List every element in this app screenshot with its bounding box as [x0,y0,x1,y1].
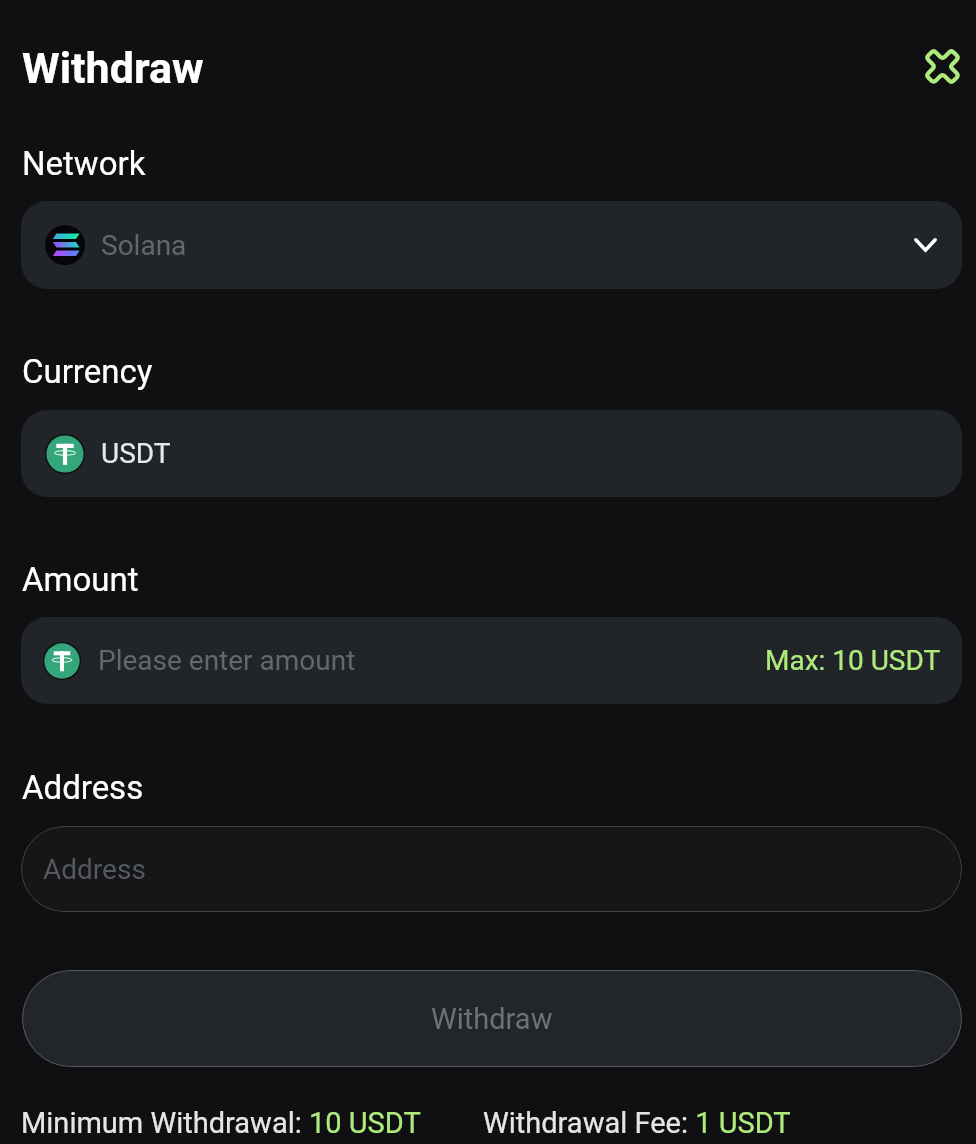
staticText: Please enter amount [98,644,356,677]
button[interactable]: Address [21,826,962,912]
staticText: Network [22,144,146,183]
staticText: Withdraw [22,43,204,93]
staticText: Max: 10 USDT [765,644,941,677]
button[interactable]: Please enter amount [21,617,962,704]
staticText: Address [22,768,144,807]
button[interactable]: USDT [21,410,962,497]
staticText: Withdraw [431,1002,553,1036]
staticText: Address [43,853,146,886]
staticText: Currency [22,352,153,391]
staticText: Solana [101,229,187,262]
staticText: Minimum Withdrawal: 10 USDT [21,1106,421,1140]
button[interactable]: Withdraw [22,970,962,1067]
staticText: USDT [101,437,171,470]
button[interactable]: Close [913,37,971,95]
staticText: Withdrawal Fee: 1 USDT [483,1106,791,1140]
button[interactable]: Solana [21,201,962,289]
staticText: Amount [22,560,139,599]
